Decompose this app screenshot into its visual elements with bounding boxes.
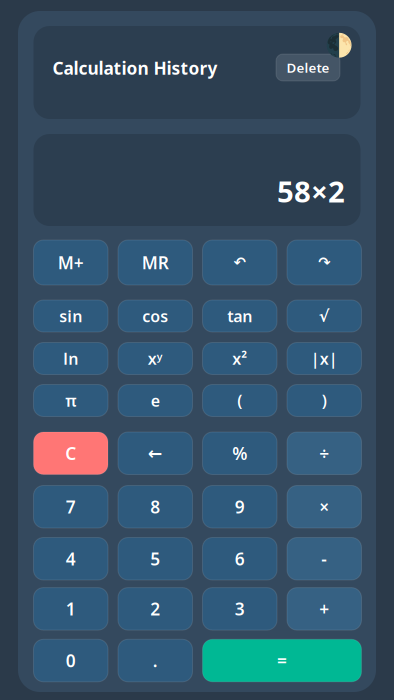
staticText: 🌓: [325, 32, 353, 58]
staticText: 2: [150, 597, 160, 620]
button[interactable]: 9: [202, 485, 277, 528]
staticText: √: [319, 307, 330, 325]
button[interactable]: 1: [33, 588, 108, 630]
staticText: 6: [235, 547, 245, 570]
button[interactable]: e: [118, 384, 192, 416]
button[interactable]: %: [202, 432, 277, 474]
button[interactable]: -: [287, 537, 361, 580]
button[interactable]: +: [287, 588, 361, 630]
button[interactable]: π: [33, 384, 108, 416]
staticText: Calculation History: [52, 56, 217, 79]
staticText: 1: [66, 597, 76, 620]
button[interactable]: |x|: [287, 342, 361, 374]
staticText: ln: [63, 348, 78, 369]
staticText: -: [321, 547, 327, 570]
staticText: e: [151, 390, 160, 411]
staticText: ÷: [319, 442, 329, 465]
staticText: 4: [66, 547, 76, 570]
button[interactable]: ): [287, 384, 361, 416]
staticText: MR: [142, 251, 169, 274]
staticText: 0: [66, 649, 76, 672]
staticText: .: [153, 649, 158, 672]
button[interactable]: M+: [33, 240, 108, 285]
button[interactable]: ↶: [202, 240, 277, 285]
staticText: ↷: [318, 254, 330, 271]
button[interactable]: (: [202, 384, 277, 416]
button[interactable]: ←: [118, 432, 192, 474]
button[interactable]: xʸ: [118, 342, 192, 374]
staticText: 58×2: [277, 171, 345, 210]
staticText: 9: [235, 495, 245, 518]
staticText: (: [237, 390, 242, 411]
staticText: |x|: [311, 348, 338, 369]
button[interactable]: 2: [118, 588, 192, 630]
button[interactable]: cos: [118, 300, 192, 332]
button[interactable]: sin: [33, 300, 108, 332]
button[interactable]: ln: [33, 342, 108, 374]
staticText: ×: [319, 495, 329, 518]
staticText: xʸ: [148, 348, 163, 369]
staticText: M+: [58, 251, 84, 274]
button[interactable]: MR: [118, 240, 192, 285]
staticText: 3: [235, 597, 245, 620]
button[interactable]: 6: [202, 537, 277, 580]
staticText: %: [232, 442, 247, 465]
staticText: 5: [150, 547, 160, 570]
button[interactable]: 5: [118, 537, 192, 580]
staticText: Delete: [286, 59, 329, 76]
staticText: 8: [150, 495, 160, 518]
button[interactable]: ÷: [287, 432, 361, 474]
staticText: ←: [148, 443, 163, 463]
staticText: ↶: [234, 254, 246, 271]
button[interactable]: ↷: [287, 240, 361, 285]
button[interactable]: 8: [118, 485, 192, 528]
button[interactable]: Delete: [276, 54, 340, 81]
staticText: C: [65, 442, 76, 465]
staticText: π: [65, 390, 76, 411]
button[interactable]: 7: [33, 485, 108, 528]
button[interactable]: =: [202, 639, 361, 682]
button[interactable]: C: [33, 432, 108, 474]
button[interactable]: .: [118, 639, 192, 682]
button[interactable]: 4: [33, 537, 108, 580]
staticText: cos: [142, 305, 168, 327]
staticText: +: [319, 597, 329, 620]
button[interactable]: ×: [287, 485, 361, 528]
button[interactable]: tan: [202, 300, 277, 332]
button[interactable]: x²: [202, 342, 277, 374]
staticText: =: [277, 649, 287, 672]
staticText: ): [322, 390, 327, 411]
staticText: tan: [227, 305, 252, 327]
button[interactable]: √: [287, 300, 361, 332]
staticText: x²: [232, 348, 247, 369]
button[interactable]: 3: [202, 588, 277, 630]
staticText: sin: [59, 305, 82, 327]
button[interactable]: 0: [33, 639, 108, 682]
staticText: 7: [66, 495, 76, 518]
